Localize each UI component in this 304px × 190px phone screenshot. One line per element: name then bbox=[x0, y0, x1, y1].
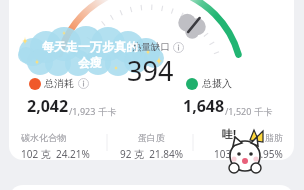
staticText: /1,520 bbox=[225, 105, 252, 117]
staticText: 102 克 24.21% bbox=[21, 147, 90, 161]
staticText: 1,648 bbox=[183, 95, 225, 117]
staticText: 总消耗 bbox=[44, 77, 74, 90]
staticText: 脂肪 bbox=[265, 132, 283, 143]
staticText: 千卡 bbox=[252, 105, 273, 117]
staticText: 103 克 53.95% bbox=[214, 147, 283, 161]
staticText: 蛋白质 bbox=[138, 132, 165, 143]
button[interactable]: 热量缺口 bbox=[132, 41, 184, 53]
staticText: 会瘦 bbox=[78, 55, 102, 70]
staticText: 总摄入 bbox=[202, 77, 232, 90]
staticText: 热量缺口 bbox=[132, 41, 170, 53]
staticText: /1,923 bbox=[69, 105, 96, 117]
staticText: 92 克 21.84% bbox=[120, 147, 184, 161]
staticText: 千卡 bbox=[96, 105, 117, 117]
staticText: 2,042 bbox=[27, 95, 69, 117]
staticText: 碳水化合物 bbox=[21, 132, 66, 143]
staticText: 每天走一万步真的 bbox=[42, 39, 138, 54]
staticText: 哇! bbox=[222, 126, 237, 141]
staticText: 394 bbox=[127, 52, 174, 89]
